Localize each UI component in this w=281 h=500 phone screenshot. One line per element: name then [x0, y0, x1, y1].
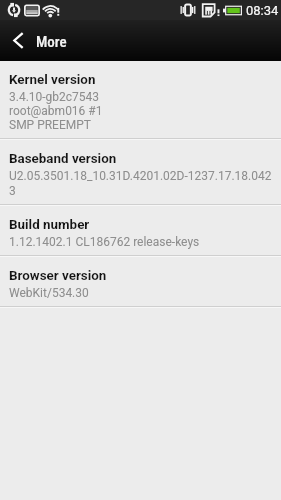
staticText: WebKit/534.30: [9, 286, 89, 300]
button[interactable]: Kernel version: [0, 61, 281, 138]
staticText: More: [36, 33, 67, 51]
staticText: U2.05.3501.18_10.31D.4201.02D-1237.17.18…: [9, 169, 272, 198]
button[interactable]: Baseband version: [0, 140, 281, 204]
button[interactable]: Build number: [0, 206, 281, 255]
staticText: SMP PREEMPT: [9, 118, 91, 132]
staticText: root@abm016 #1: [9, 104, 103, 118]
staticText: 08:34: [246, 3, 279, 18]
staticText: Kernel version: [9, 72, 96, 88]
button[interactable]: Browser version: [0, 257, 281, 306]
staticText: 3.4.10-gb2c7543: [9, 90, 100, 104]
button[interactable]: Back: [0, 20, 36, 61]
staticText: Build number: [9, 217, 90, 233]
staticText: Browser version: [9, 268, 107, 284]
staticText: 1.12.1402.1 CL186762 release-keys: [9, 235, 200, 249]
staticText: Baseband version: [9, 151, 117, 167]
